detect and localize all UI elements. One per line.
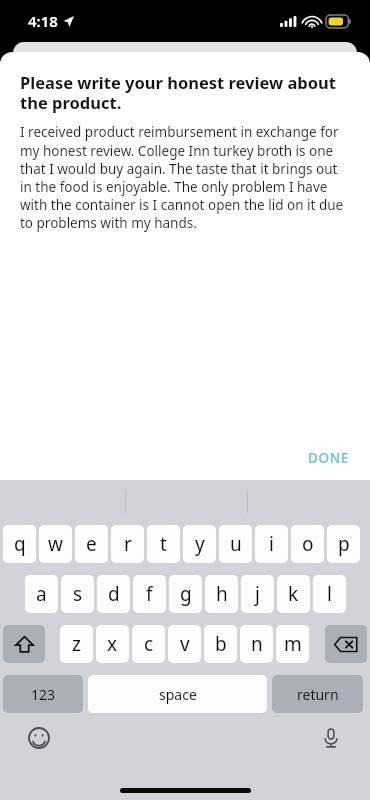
staticText: e (86, 531, 97, 557)
button[interactable]: u (219, 525, 252, 563)
staticText: DONE (308, 449, 349, 467)
staticText: w (48, 531, 63, 557)
button[interactable]: q (3, 525, 36, 563)
staticText: I received product reimbursement in exch… (20, 123, 350, 231)
staticText: j (255, 581, 260, 607)
button[interactable]: n (240, 625, 273, 663)
staticText: p (338, 531, 350, 557)
staticText: h (216, 581, 228, 607)
button[interactable]: a (25, 575, 58, 613)
button[interactable]: p (327, 525, 360, 563)
staticText: u (230, 531, 242, 557)
staticText: r (124, 531, 132, 557)
staticText: b (215, 631, 227, 657)
staticText: t (160, 531, 167, 557)
button[interactable]: r (111, 525, 144, 563)
staticText: x (107, 631, 118, 657)
staticText: l (327, 581, 332, 607)
staticText: 4:18 (28, 11, 58, 31)
staticText: 123 (31, 685, 56, 704)
staticText: m (284, 631, 302, 657)
button[interactable]: c (132, 625, 165, 663)
button[interactable]: j (241, 575, 274, 613)
staticText: v (180, 631, 190, 657)
staticText: Please write your honest review about th… (20, 71, 350, 114)
button[interactable]: x (96, 625, 129, 663)
staticText: k (288, 581, 299, 607)
button[interactable]: i (255, 525, 288, 563)
button[interactable]: g (169, 575, 202, 613)
button[interactable]: m (276, 625, 309, 663)
staticText: o (302, 531, 314, 557)
button[interactable]: v (168, 625, 201, 663)
button[interactable]: s (61, 575, 94, 613)
staticText: d (108, 581, 120, 607)
button[interactable]: Emoji (25, 724, 52, 751)
staticText: space (159, 685, 197, 704)
button[interactable]: Shift (3, 625, 45, 663)
button[interactable]: h (205, 575, 238, 613)
button[interactable]: Dictate (317, 724, 344, 751)
button[interactable]: f (133, 575, 166, 613)
button[interactable]: d (97, 575, 130, 613)
button[interactable]: 123 (3, 675, 83, 713)
button[interactable]: t (147, 525, 180, 563)
staticText: y (195, 531, 205, 557)
button[interactable]: b (204, 625, 237, 663)
staticText: i (269, 531, 274, 557)
button[interactable]: space (88, 675, 267, 713)
button[interactable]: k (277, 575, 310, 613)
staticText: return (297, 685, 339, 704)
staticText: a (36, 581, 47, 607)
staticText: s (73, 581, 83, 607)
button[interactable]: return (272, 675, 363, 713)
button[interactable]: Backspace (325, 625, 367, 663)
staticText: c (144, 631, 154, 657)
button[interactable]: w (39, 525, 72, 563)
staticText: z (72, 631, 81, 657)
button[interactable]: o (291, 525, 324, 563)
button[interactable]: DONE (304, 446, 353, 470)
staticText: q (14, 531, 26, 557)
button[interactable]: l (313, 575, 346, 613)
button[interactable]: y (183, 525, 216, 563)
button[interactable]: e (75, 525, 108, 563)
staticText: g (180, 581, 192, 607)
staticText: f (146, 581, 153, 607)
staticText: n (251, 631, 263, 657)
button[interactable]: z (60, 625, 93, 663)
